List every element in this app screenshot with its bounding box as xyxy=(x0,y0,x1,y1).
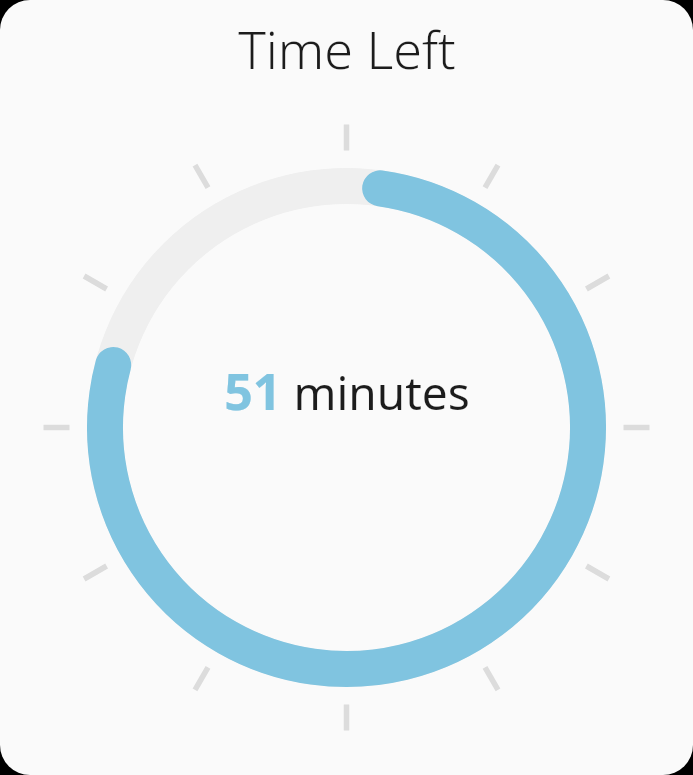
button[interactable]: Time Left timer, 51 minutes remaining xyxy=(0,0,693,775)
staticText: 51 minutes xyxy=(224,357,470,425)
staticText: Time Left xyxy=(238,13,456,84)
